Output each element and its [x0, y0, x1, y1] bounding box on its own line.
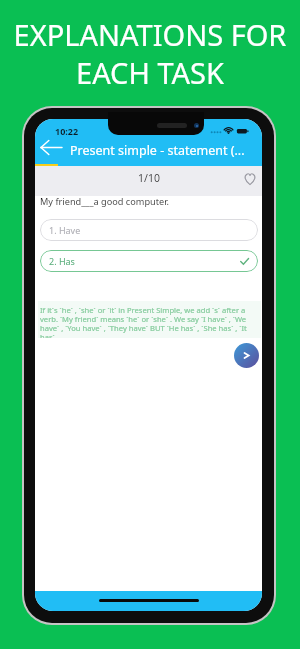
- staticText: 2. Has: [49, 255, 75, 267]
- staticText: 1. Have: [49, 224, 81, 236]
- button[interactable]: Back: [37, 138, 65, 159]
- button[interactable]: Favorite: [241, 170, 259, 188]
- staticText: If it´s ´he´ , ´she´ or ´it´ in Present …: [40, 305, 259, 338]
- button[interactable]: 2. Has: [40, 250, 258, 272]
- button[interactable]: 1. Have: [40, 219, 258, 241]
- staticText: EXPLANATIONS FOR EACH TASK: [0, 15, 300, 93]
- staticText: 10:22: [55, 125, 79, 137]
- button[interactable]: Next: [234, 343, 259, 368]
- staticText: My friend___a good computer.: [40, 195, 169, 208]
- staticText: Present simple - statement (...: [70, 142, 245, 159]
- staticText: 1/10: [138, 171, 160, 185]
